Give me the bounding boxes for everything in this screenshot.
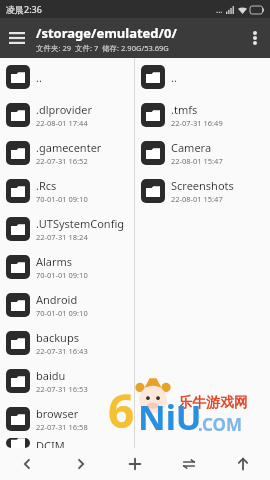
staticText: /storage/emulated/0/ (36, 24, 177, 42)
button[interactable]: Android (0, 286, 134, 324)
staticText: .Rcs (36, 178, 57, 193)
button[interactable]: .. (135, 58, 270, 96)
staticText: NiU (138, 394, 202, 440)
button[interactable]: .gamecenter (0, 134, 134, 172)
staticText: backups (36, 330, 79, 345)
staticText: 70-01-01 09:10 (36, 270, 88, 280)
staticText: 70-01-01 09:10 (36, 194, 88, 204)
staticText: .. (171, 70, 177, 85)
button[interactable]: More options (240, 23, 270, 53)
staticText: Alarms (36, 254, 73, 269)
staticText: Camera (171, 140, 212, 155)
staticText: DCIM (36, 438, 65, 448)
staticText: 22-07-31 16:58 (36, 422, 88, 432)
button[interactable]: Screenshots (135, 172, 270, 210)
staticText: 70-01-01 09:10 (36, 308, 88, 318)
button[interactable]: backups (0, 324, 134, 362)
staticText: 22-07-31 16:49 (171, 118, 223, 128)
staticText: 文件夹: 29 文件: 7 储存: 2.90G/53.69G (36, 43, 169, 53)
staticText: 凌晨2:36 (6, 3, 42, 15)
button[interactable]: Alarms (0, 248, 134, 286)
button[interactable]: DCIM (0, 438, 134, 448)
button[interactable]: Menu (0, 21, 34, 55)
staticText: Android (36, 292, 78, 307)
staticText: 22-07-31 18:24 (36, 232, 88, 242)
staticText: Screenshots (171, 178, 234, 193)
button[interactable]: Camera (135, 134, 270, 172)
staticText: .UTSystemConfig (36, 216, 125, 231)
staticText: ... (216, 4, 223, 15)
staticText: baidu (36, 368, 66, 383)
staticText: .. (36, 70, 42, 85)
staticText: 22-08-01 15:47 (171, 156, 223, 166)
button[interactable]: .. (0, 58, 134, 96)
staticText: 22-08-01 15:47 (171, 194, 223, 204)
button[interactable]: .UTSystemConfig (0, 210, 134, 248)
button[interactable]: Forward (54, 448, 108, 480)
staticText: .tmfs (171, 102, 198, 117)
staticText: .COM (198, 413, 242, 436)
button[interactable]: Up (216, 448, 270, 480)
button[interactable]: browser (0, 400, 134, 438)
staticText: 22-07-31 16:52 (36, 156, 88, 166)
button[interactable]: New (108, 448, 162, 480)
staticText: .dlprovider (36, 102, 93, 117)
staticText: 22-08-01 17:44 (36, 118, 88, 128)
button[interactable]: baidu (0, 362, 134, 400)
button[interactable]: .dlprovider (0, 96, 134, 134)
staticText: 乐牛游戏网 (178, 394, 248, 412)
staticText: 6 (108, 379, 135, 442)
staticText: 22-07-31 16:43 (36, 346, 88, 356)
staticText: browser (36, 406, 79, 421)
button[interactable]: .tmfs (135, 96, 270, 134)
staticText: 22-07-31 16:53 (36, 384, 88, 394)
button[interactable]: Back (0, 448, 54, 480)
staticText: .gamecenter (36, 140, 102, 155)
button[interactable]: .Rcs (0, 172, 134, 210)
button[interactable]: Swap panes (162, 448, 216, 480)
